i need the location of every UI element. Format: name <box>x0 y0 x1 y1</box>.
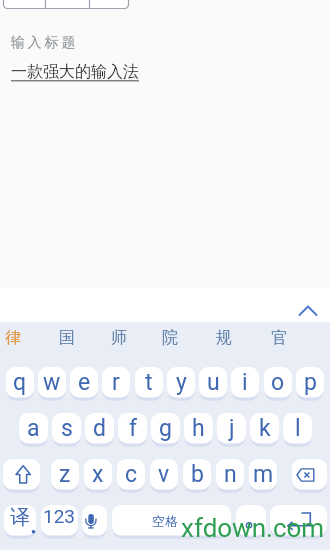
button[interactable]: 一款强大的输入法 <box>11 62 139 82</box>
button[interactable]: k <box>250 413 279 447</box>
button[interactable]: 律 <box>5 328 21 348</box>
button[interactable]: i <box>231 367 259 401</box>
button[interactable]: 国 <box>59 328 75 348</box>
button[interactable]: y <box>167 367 195 401</box>
staticText: v <box>158 461 170 488</box>
button[interactable] <box>292 459 327 493</box>
staticText: e <box>78 369 91 396</box>
staticText: s <box>61 415 73 442</box>
button[interactable]: v <box>150 459 178 493</box>
staticText: xfdown.com <box>181 513 325 543</box>
button[interactable]: u <box>199 367 227 401</box>
staticText: g <box>159 415 172 442</box>
staticText: o <box>271 369 285 396</box>
button[interactable]: f <box>118 413 147 447</box>
button[interactable]: q <box>6 367 34 401</box>
button[interactable]: r <box>102 367 130 401</box>
staticText: m <box>253 461 274 488</box>
staticText: j <box>229 415 235 442</box>
staticText: f <box>129 415 137 442</box>
staticText: 译 <box>10 505 30 530</box>
button[interactable]: o <box>264 367 292 401</box>
staticText: a <box>27 415 40 442</box>
button[interactable]: z <box>51 459 79 493</box>
button[interactable]: l <box>283 413 312 447</box>
button[interactable]: t <box>135 367 163 401</box>
button[interactable]: b <box>183 459 211 493</box>
staticText: z <box>59 461 71 488</box>
staticText: k <box>259 415 271 442</box>
staticText: h <box>192 415 205 442</box>
button[interactable]: 院 <box>162 328 178 348</box>
staticText: y <box>176 369 187 396</box>
button[interactable]: a <box>19 413 48 447</box>
button[interactable] <box>82 505 107 539</box>
button[interactable]: n <box>216 459 244 493</box>
staticText: b <box>191 461 204 488</box>
button[interactable]: 师 <box>111 328 127 348</box>
staticText: 123 <box>43 505 76 527</box>
button[interactable] <box>270 505 327 539</box>
button[interactable]: x <box>84 459 112 493</box>
button[interactable]: h <box>184 413 213 447</box>
staticText: i <box>242 369 248 396</box>
staticText: 空格 <box>152 513 178 529</box>
button[interactable]: g <box>151 413 180 447</box>
button[interactable] <box>3 459 40 493</box>
button[interactable]: e <box>70 367 98 401</box>
button[interactable] <box>0 288 330 322</box>
staticText: n <box>224 461 237 488</box>
button[interactable]: m <box>249 459 277 493</box>
staticText: l <box>295 415 301 442</box>
staticText: t <box>145 369 153 396</box>
staticText: q <box>13 369 27 396</box>
button[interactable]: 空格 <box>112 505 231 539</box>
button[interactable]: 译 <box>4 505 36 539</box>
button[interactable]: d <box>85 413 114 447</box>
staticText: 输入标题 <box>9 34 77 52</box>
staticText: r <box>112 369 120 396</box>
staticText: u <box>207 369 220 396</box>
button[interactable]: 123 <box>41 505 78 539</box>
staticText: d <box>93 415 106 442</box>
button[interactable]: 规 <box>216 328 232 348</box>
staticText: x <box>92 461 104 488</box>
button[interactable]: c <box>117 459 145 493</box>
button[interactable]: 官 <box>271 328 287 348</box>
button[interactable]: p <box>296 367 324 401</box>
staticText: p <box>304 369 317 396</box>
button[interactable]: s <box>52 413 81 447</box>
button[interactable] <box>236 505 266 539</box>
staticText: w <box>43 369 61 396</box>
staticText: c <box>125 461 138 488</box>
button[interactable]: j <box>217 413 246 447</box>
button[interactable]: w <box>38 367 66 401</box>
